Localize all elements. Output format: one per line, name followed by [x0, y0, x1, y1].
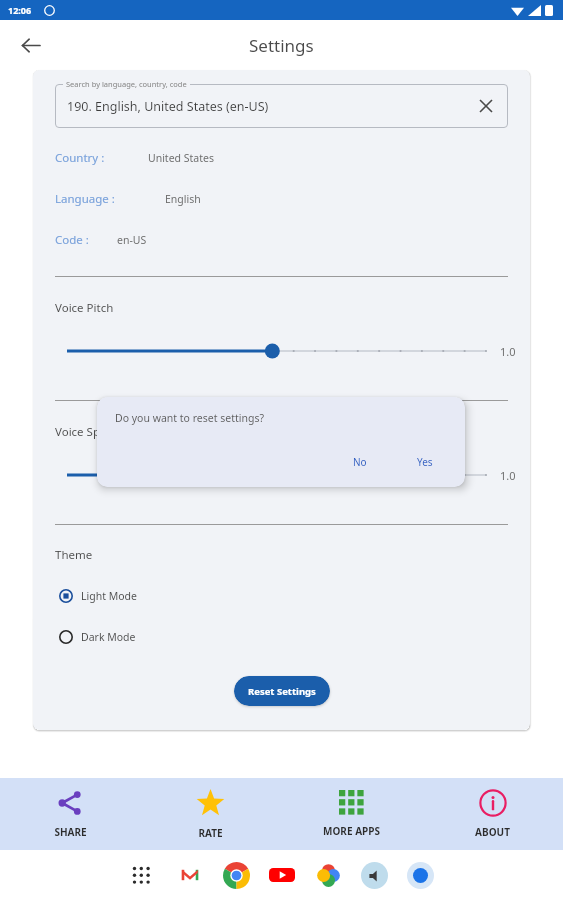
staticText: ABOUT — [475, 825, 510, 839]
button[interactable]: MORE APPS — [281, 778, 422, 850]
staticText: SHARE — [54, 825, 87, 839]
button[interactable]: RATE — [140, 778, 281, 850]
staticText: English — [165, 192, 201, 206]
staticText: 1.0 — [500, 468, 516, 483]
staticText: United States — [148, 151, 214, 165]
staticText: Do you want to reset settings? — [115, 411, 264, 425]
staticText: Settings — [249, 34, 314, 57]
button[interactable]: SHARE — [0, 778, 140, 850]
staticText: Voice Speed — [55, 424, 121, 440]
button[interactable] — [67, 338, 486, 364]
button[interactable]: Dark Mode — [59, 624, 136, 650]
button[interactable]: Messages — [397, 852, 443, 898]
staticText: Search by language, country, code — [66, 79, 187, 89]
staticText: Light Mode — [81, 589, 137, 603]
staticText: RATE — [198, 826, 223, 840]
button[interactable]: 190. English, United States (en-US) — [55, 84, 508, 128]
button[interactable]: Reset Settings — [234, 676, 330, 706]
staticText: Dark Mode — [81, 630, 136, 644]
staticText: Voice Pitch — [55, 300, 114, 316]
staticText: Reset Settings — [248, 685, 316, 698]
button[interactable]: All apps — [121, 855, 161, 895]
button[interactable]: Sound — [351, 852, 397, 898]
button[interactable]: Light Mode — [59, 583, 137, 609]
staticText: No — [353, 455, 367, 469]
button[interactable]: Yes — [405, 451, 445, 473]
button[interactable]: Back — [10, 25, 50, 65]
button[interactable]: ABOUT — [422, 778, 563, 850]
button[interactable]: Gmail — [167, 852, 213, 898]
button[interactable] — [67, 462, 486, 488]
button[interactable]: YouTube — [259, 852, 305, 898]
button[interactable]: Clear — [474, 94, 498, 118]
staticText: Code : — [55, 232, 89, 248]
staticText: Yes — [417, 455, 433, 469]
staticText: MORE APPS — [323, 824, 380, 838]
staticText: Country : — [55, 150, 105, 166]
button[interactable]: No — [341, 451, 379, 473]
staticText: 190. English, United States (en-US) — [67, 98, 269, 115]
button[interactable]: Chrome — [213, 852, 259, 898]
staticText: 12:06 — [8, 4, 32, 16]
staticText: en-US — [117, 233, 147, 247]
staticText: Language : — [55, 191, 115, 207]
staticText: Theme — [55, 547, 93, 563]
button[interactable]: Photos — [305, 852, 351, 898]
staticText: 1.0 — [500, 344, 516, 359]
